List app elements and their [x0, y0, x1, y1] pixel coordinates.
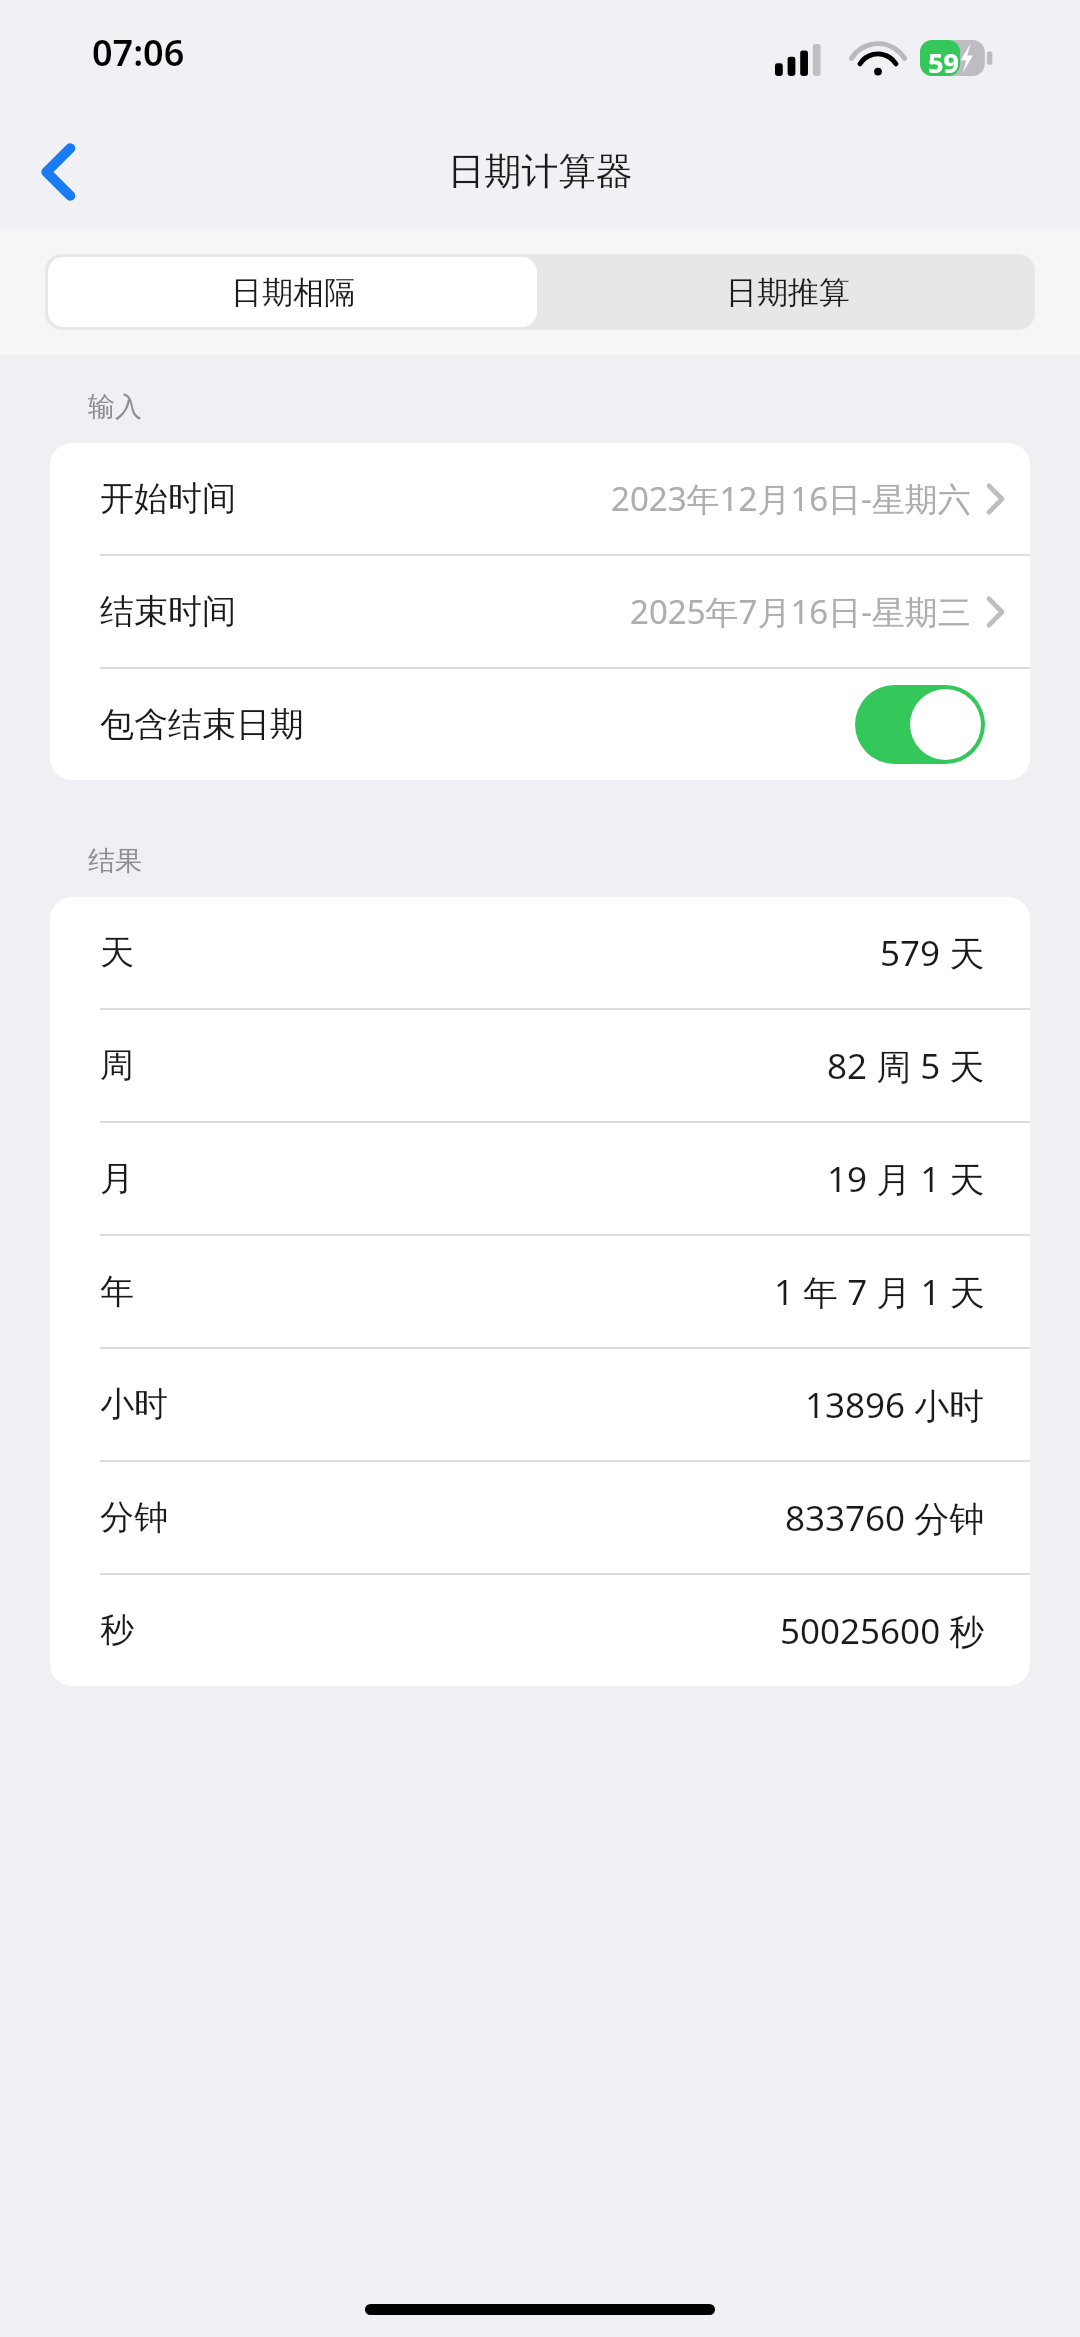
staticText: 1 年 7 月 1 天	[774, 1268, 985, 1316]
staticText: 833760 分钟	[785, 1494, 985, 1542]
staticText: 82 周 5 天	[827, 1042, 985, 1090]
button[interactable]: 秒	[50, 1575, 1030, 1686]
button[interactable]: 开始时间	[50, 443, 1030, 554]
staticText: 周	[100, 1044, 134, 1087]
button[interactable]: 日期相隔	[48, 257, 537, 327]
staticText: 579 天	[880, 929, 985, 977]
staticText: 59	[928, 44, 959, 81]
staticText: 年	[100, 1270, 134, 1313]
button[interactable]: 分钟	[50, 1462, 1030, 1573]
staticText: 19 月 1 天	[827, 1155, 985, 1203]
staticText: 日期相隔	[231, 273, 355, 312]
button[interactable]: 包含结束日期开关	[855, 685, 985, 764]
staticText: 输入	[88, 390, 142, 424]
staticText: 开始时间	[100, 477, 236, 520]
staticText: 小时	[100, 1383, 168, 1426]
button[interactable]: 包含结束日期	[50, 669, 1030, 780]
staticText: 包含结束日期	[100, 703, 304, 746]
staticText: 07:06	[92, 28, 185, 77]
staticText: 结果	[88, 844, 142, 878]
staticText: 2023年12月16日-星期六	[611, 476, 971, 521]
button[interactable]: 年	[50, 1236, 1030, 1347]
button[interactable]: 天	[50, 897, 1030, 1008]
button[interactable]: 日期推算	[540, 254, 1035, 330]
button[interactable]: 结束时间	[50, 556, 1030, 667]
staticText: 分钟	[100, 1496, 168, 1539]
button[interactable]: 周	[50, 1010, 1030, 1121]
staticText: 结束时间	[100, 590, 236, 633]
staticText: 13896 小时	[805, 1381, 985, 1429]
staticText: 2025年7月16日-星期三	[630, 589, 971, 634]
staticText: 秒	[100, 1609, 134, 1652]
staticText: 天	[100, 931, 134, 974]
button[interactable]: 返回	[14, 128, 102, 216]
staticText: 月	[100, 1157, 134, 1200]
staticText: 日期计算器	[0, 148, 1080, 195]
button[interactable]: 小时	[50, 1349, 1030, 1460]
staticText: 50025600 秒	[780, 1607, 985, 1655]
button[interactable]: 月	[50, 1123, 1030, 1234]
staticText: 日期推算	[726, 273, 850, 312]
